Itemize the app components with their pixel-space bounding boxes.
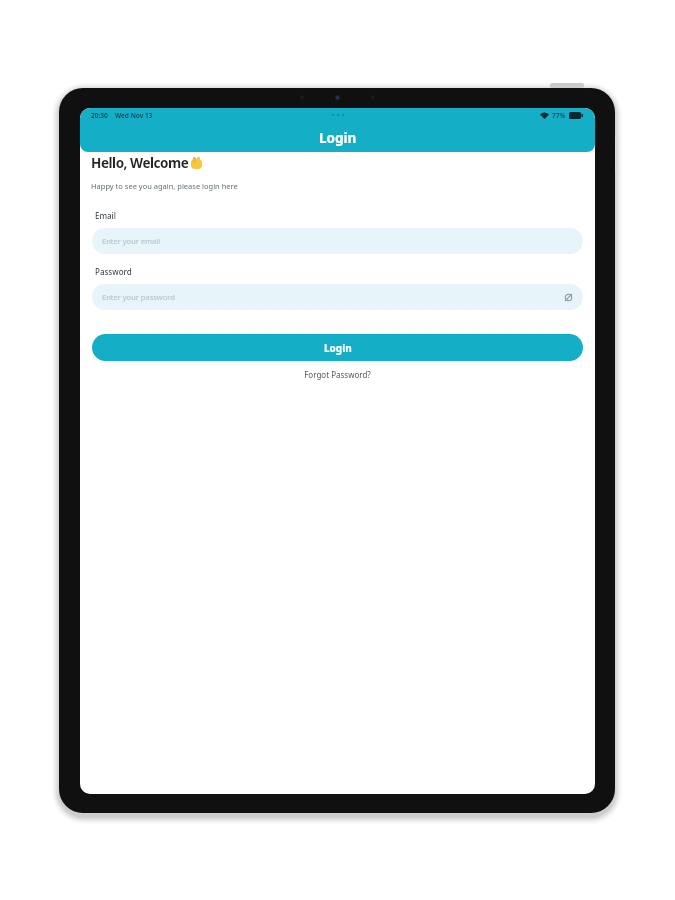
button[interactable]: Enter your password <box>92 284 583 310</box>
staticText: Happy to see you again, please login her… <box>91 181 238 191</box>
staticText: Hello, Welcome <box>91 154 189 172</box>
staticText: Email <box>95 210 116 221</box>
staticText: Enter your email <box>102 236 161 246</box>
staticText: 77% <box>552 111 566 120</box>
staticText: Password <box>95 266 132 277</box>
staticText: 20:30 <box>91 111 108 120</box>
staticText: Login <box>319 129 357 147</box>
staticText: Wed Nov 13 <box>115 111 153 120</box>
button[interactable]: Login <box>92 334 583 361</box>
button[interactable]: Forgot Password? <box>80 369 595 380</box>
staticText: Login <box>324 341 352 355</box>
button[interactable]: Enter your email <box>92 228 583 254</box>
staticText: Enter your password <box>102 292 175 302</box>
